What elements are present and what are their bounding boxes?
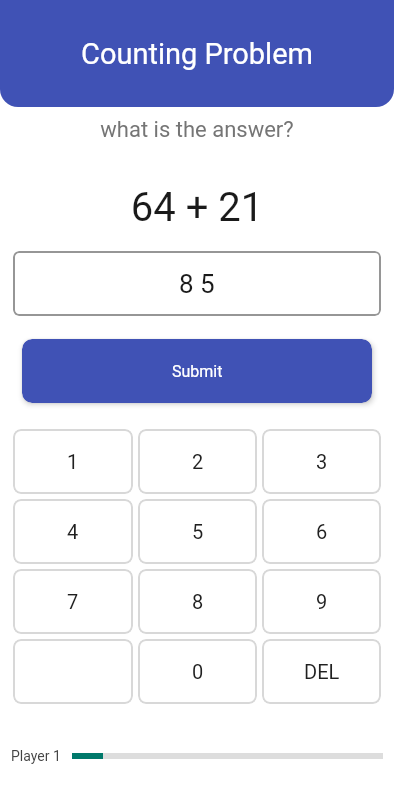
staticText: 4	[67, 520, 79, 543]
staticText: Counting Problem	[81, 37, 313, 71]
button[interactable]	[13, 639, 133, 704]
button[interactable]: 0	[138, 639, 257, 704]
staticText: 2	[192, 450, 204, 473]
staticText: what is the answer?	[0, 117, 394, 143]
staticText: 8 5	[179, 269, 215, 299]
button[interactable]: 2	[138, 429, 257, 494]
button[interactable]: 8	[138, 569, 257, 634]
staticText: 64 + 21	[0, 184, 394, 231]
button[interactable]: 1	[13, 429, 133, 494]
staticText: 0	[192, 660, 204, 683]
staticText: Submit	[172, 362, 223, 381]
staticText: 7	[67, 590, 79, 613]
button[interactable]: 4	[13, 499, 133, 564]
staticText: 3	[316, 450, 328, 473]
staticText: 5	[192, 520, 204, 543]
staticText: 6	[316, 520, 328, 543]
button[interactable]: Submit	[22, 339, 372, 403]
staticText: Player 1	[11, 748, 61, 764]
button[interactable]: 5	[138, 499, 257, 564]
staticText: 1	[67, 450, 79, 473]
button[interactable]: 8 5	[13, 251, 381, 316]
button[interactable]: 7	[13, 569, 133, 634]
staticText: 9	[316, 590, 328, 613]
button[interactable]: DEL	[262, 639, 381, 704]
staticText: 8	[192, 590, 204, 613]
button[interactable]: 6	[262, 499, 381, 564]
button[interactable]: 9	[262, 569, 381, 634]
staticText: DEL	[304, 660, 340, 683]
button[interactable]: 3	[262, 429, 381, 494]
